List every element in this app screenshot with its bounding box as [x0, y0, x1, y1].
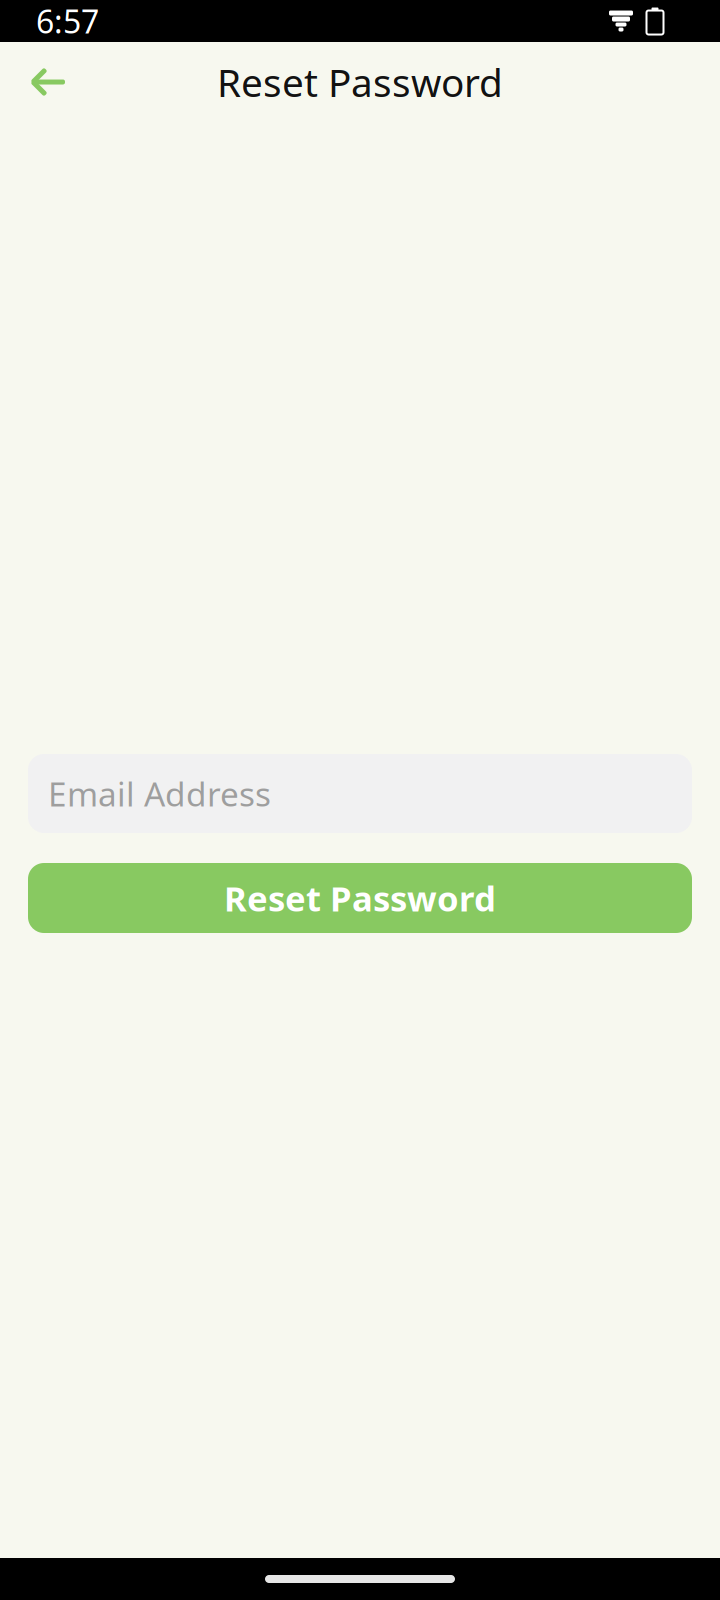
staticText: Email Address	[48, 771, 271, 816]
button[interactable]: Reset Password	[28, 863, 692, 933]
staticText: 6:57	[36, 0, 99, 42]
staticText: Reset Password	[217, 56, 503, 108]
button[interactable]: Back	[20, 53, 78, 111]
staticText: Reset Password	[224, 875, 496, 921]
